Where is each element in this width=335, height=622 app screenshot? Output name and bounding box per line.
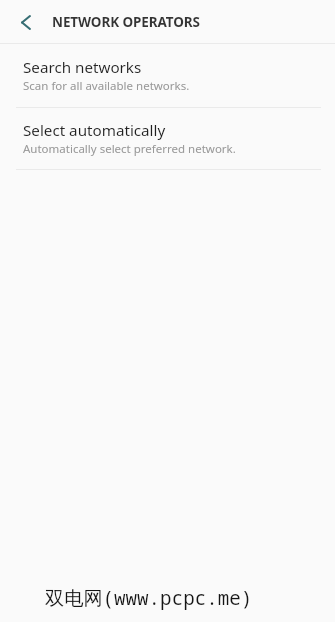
staticText: Scan for all available networks. [23,78,190,94]
staticText: Automatically select preferred network. [23,141,236,157]
staticText: NETWORK OPERATORS [52,13,200,31]
button[interactable]: Select automatically [0,108,335,169]
staticText: 双电网(www.pcpc.me) [45,584,253,610]
button[interactable]: Navigate up [0,0,44,43]
button[interactable]: Search networks [0,44,335,107]
staticText: Search networks [23,57,142,78]
staticText: Select automatically [23,120,166,141]
